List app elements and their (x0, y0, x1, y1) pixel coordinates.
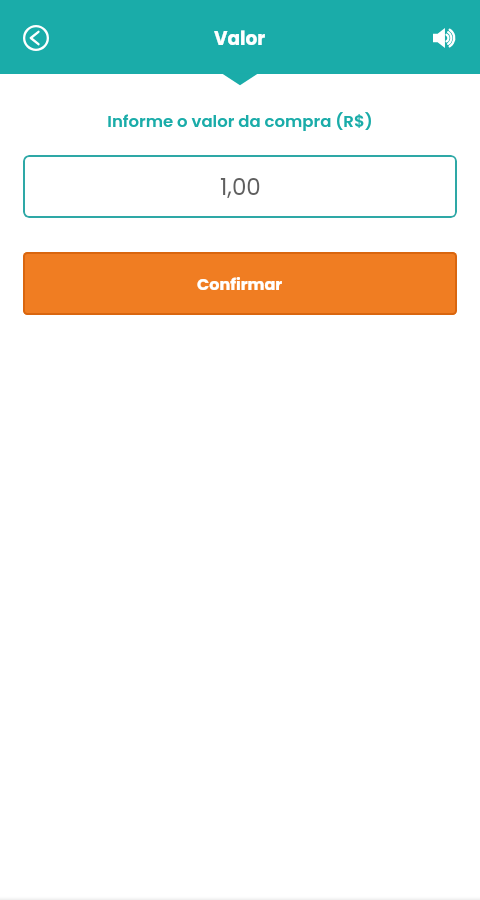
button[interactable]: Voltar (13, 15, 58, 60)
staticText: Valor (214, 26, 266, 52)
staticText: Confirmar (197, 273, 283, 295)
staticText: 1,00 (220, 171, 261, 203)
button[interactable]: Confirmar (23, 252, 457, 315)
staticText: Informe o valor da compra (R$) (0, 110, 480, 133)
button[interactable]: 1,00 (23, 155, 457, 218)
button[interactable]: Som (422, 15, 467, 60)
